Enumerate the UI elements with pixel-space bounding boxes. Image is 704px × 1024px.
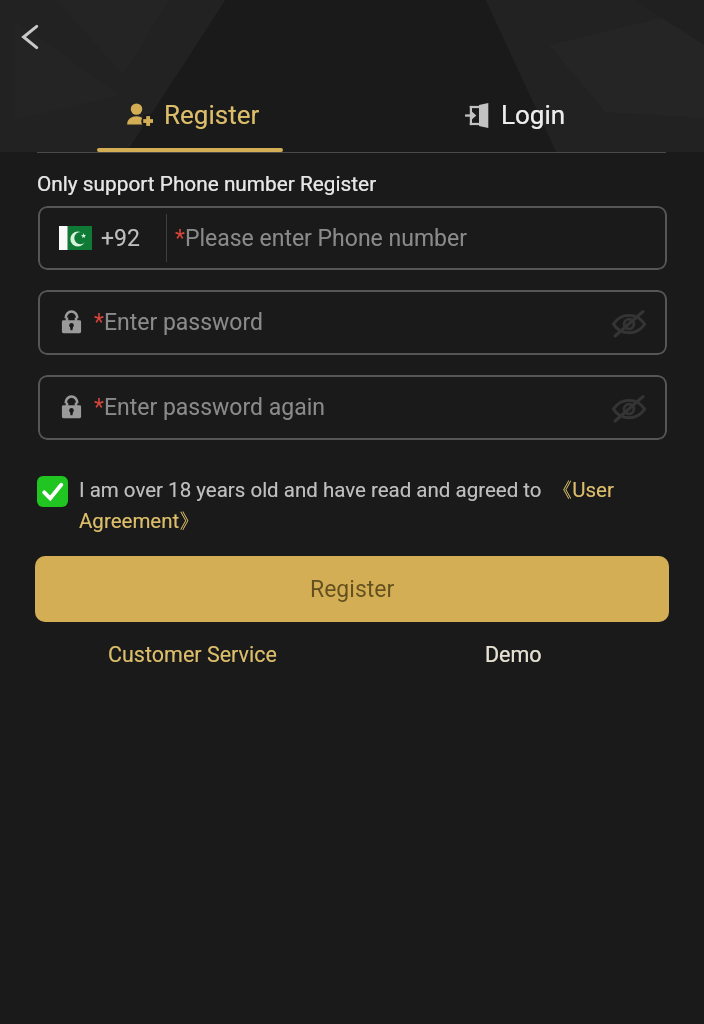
staticText: Login — [501, 100, 566, 130]
staticText: Demo — [485, 642, 542, 667]
staticText: Customer Service — [108, 642, 277, 667]
button[interactable]: Customer Service — [96, 634, 289, 675]
button[interactable]: Register — [110, 90, 276, 140]
staticText: *Enter password — [94, 309, 264, 336]
button[interactable]: Show password — [605, 384, 653, 432]
button[interactable]: Agree to terms checkbox — [37, 476, 68, 507]
button[interactable]: +92 — [38, 207, 166, 269]
staticText: +92 — [101, 225, 140, 252]
staticText: *Enter password again — [94, 394, 325, 421]
staticText: Only support Phone number Register — [37, 172, 377, 196]
button[interactable]: Register — [35, 556, 669, 622]
button[interactable]: *Enter password — [38, 290, 667, 355]
staticText: *Please enter Phone number — [175, 225, 467, 252]
button[interactable]: Show password — [605, 299, 653, 347]
button[interactable]: +92 — [38, 206, 667, 270]
button[interactable]: *Enter password again — [38, 375, 667, 440]
staticText: Register — [310, 576, 395, 603]
staticText: I am over 18 years old and have read and… — [79, 477, 667, 534]
button[interactable]: Back — [6, 13, 54, 61]
button[interactable]: Demo — [473, 634, 554, 675]
button[interactable]: Login — [448, 90, 582, 140]
staticText: Register — [164, 100, 260, 130]
